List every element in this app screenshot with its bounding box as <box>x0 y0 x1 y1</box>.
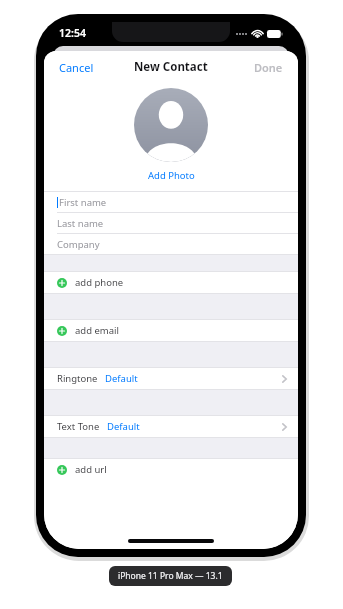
button[interactable]: add email <box>44 320 298 341</box>
staticText: Done <box>254 60 283 75</box>
staticText: Cancel <box>59 60 94 75</box>
staticText: Default <box>105 372 138 385</box>
staticText: New Contact <box>134 59 208 75</box>
staticText: add email <box>75 324 119 337</box>
staticText: add url <box>75 463 107 476</box>
button[interactable]: Company <box>44 234 298 254</box>
button[interactable]: First name <box>44 192 298 212</box>
staticText: Default <box>107 420 140 433</box>
button[interactable]: Add Photo <box>134 88 208 162</box>
button[interactable]: Done <box>244 53 298 82</box>
staticText: Text Tone <box>57 420 100 433</box>
staticText: 12:54 <box>59 26 86 40</box>
staticText: Add Photo <box>148 169 195 182</box>
button[interactable]: add phone <box>44 272 298 293</box>
button[interactable]: Ringtone <box>44 368 298 389</box>
staticText: Last name <box>57 217 104 230</box>
button[interactable]: add url <box>44 459 298 480</box>
button[interactable]: Add Photo <box>142 167 201 184</box>
staticText: add phone <box>75 276 124 289</box>
staticText: iPhone 11 Pro Max — 13.1 <box>118 570 223 582</box>
staticText: Ringtone <box>57 372 98 385</box>
button[interactable]: Last name <box>44 213 298 233</box>
staticText: First name <box>59 196 107 209</box>
button[interactable]: Cancel <box>44 53 104 82</box>
staticText: Company <box>57 238 100 251</box>
button[interactable]: Text Tone <box>44 416 298 437</box>
